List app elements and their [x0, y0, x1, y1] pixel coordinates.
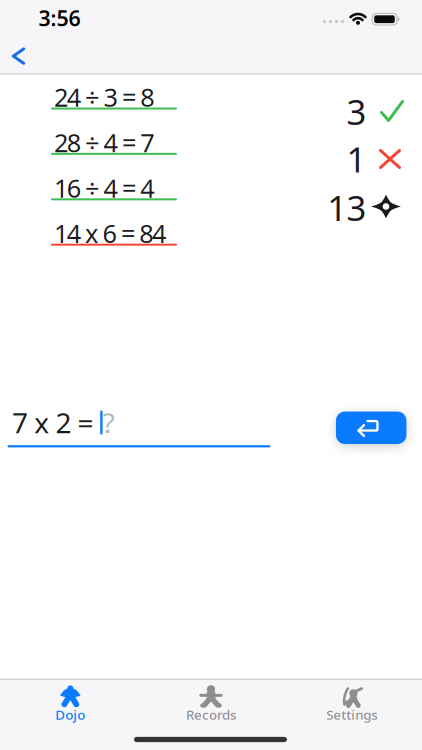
button[interactable]: Records	[141, 680, 281, 723]
staticText: ?	[103, 404, 115, 441]
button[interactable]: Settings	[281, 680, 422, 723]
staticText: 7 x 2 =	[12, 404, 100, 441]
staticText: 24 ÷ 3 = 8	[54, 80, 154, 114]
button[interactable]: Dojo	[0, 680, 141, 723]
staticText: 13	[327, 184, 366, 230]
staticText: Records	[186, 706, 236, 723]
staticText: 3:56	[38, 4, 80, 32]
button[interactable]: Submit answer	[336, 412, 406, 444]
staticText: 14 x 6 = 84	[54, 216, 166, 250]
staticText: 28 ÷ 4 = 7	[54, 126, 154, 159]
staticText: Dojo	[55, 706, 85, 723]
staticText: 3	[346, 88, 366, 134]
staticText: Settings	[326, 706, 377, 723]
staticText: 16 ÷ 4 = 4	[54, 171, 154, 205]
button[interactable]: Back	[11, 48, 27, 65]
staticText: 1	[346, 136, 366, 182]
